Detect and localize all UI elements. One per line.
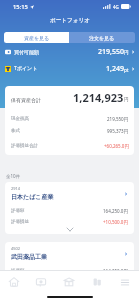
staticText: 4G	[113, 4, 119, 10]
staticText: 15:15	[13, 3, 28, 11]
staticText: 評価額	[11, 268, 25, 274]
staticText: +60,265.0円	[104, 143, 129, 149]
staticText: +10,500.0円	[103, 219, 128, 225]
staticText: Tポイント	[14, 65, 38, 72]
button[interactable]: Tポイント	[5, 60, 135, 77]
button[interactable]: 資産を見る	[4, 32, 69, 43]
button[interactable]: 注文を見る	[69, 32, 135, 43]
button[interactable]: Trade	[27, 271, 55, 292]
staticText: 円	[124, 50, 129, 56]
staticText: 164,250.0円	[103, 268, 128, 274]
staticText: 4502	[11, 246, 21, 251]
staticText: 995,373円	[107, 128, 129, 134]
button[interactable]: Home	[0, 271, 27, 292]
staticText: 株式	[11, 128, 20, 134]
staticText: 164,250.0円	[103, 208, 128, 214]
staticText: 219,550円	[107, 116, 129, 122]
staticText: 買付可能額	[14, 49, 39, 55]
staticText: 2914	[11, 186, 21, 191]
button[interactable]: Portfolio	[83, 271, 111, 292]
button[interactable]: Products	[55, 271, 83, 292]
staticText: +10,500.0円	[103, 279, 128, 285]
staticText: 評価損益	[11, 279, 29, 285]
staticText: pt	[124, 67, 129, 73]
staticText: 注文を見る	[89, 35, 115, 41]
staticText: 全10件	[6, 173, 21, 179]
button[interactable]: 2914	[5, 182, 134, 234]
staticText: 評価損益合計	[11, 143, 38, 149]
staticText: 現金残高	[11, 116, 29, 122]
staticText: 円	[124, 97, 129, 103]
button[interactable]: Menu	[111, 271, 139, 292]
staticText: 219,550	[98, 47, 124, 57]
staticText: 日本たばこ産業	[11, 193, 54, 201]
button[interactable]: 買付可能額	[5, 43, 135, 60]
staticText: 1,214,923	[73, 90, 124, 105]
staticText: ポートフォリオ	[50, 17, 90, 24]
staticText: 資産を見る	[24, 35, 50, 41]
staticText: 保有資産合計	[11, 97, 41, 103]
staticText: 1,249	[106, 64, 124, 74]
staticText: 武田薬品工業	[11, 253, 47, 261]
staticText: 評価額	[11, 208, 25, 214]
button[interactable]: 4502	[5, 242, 134, 294]
staticText: 評価損益	[11, 219, 29, 225]
